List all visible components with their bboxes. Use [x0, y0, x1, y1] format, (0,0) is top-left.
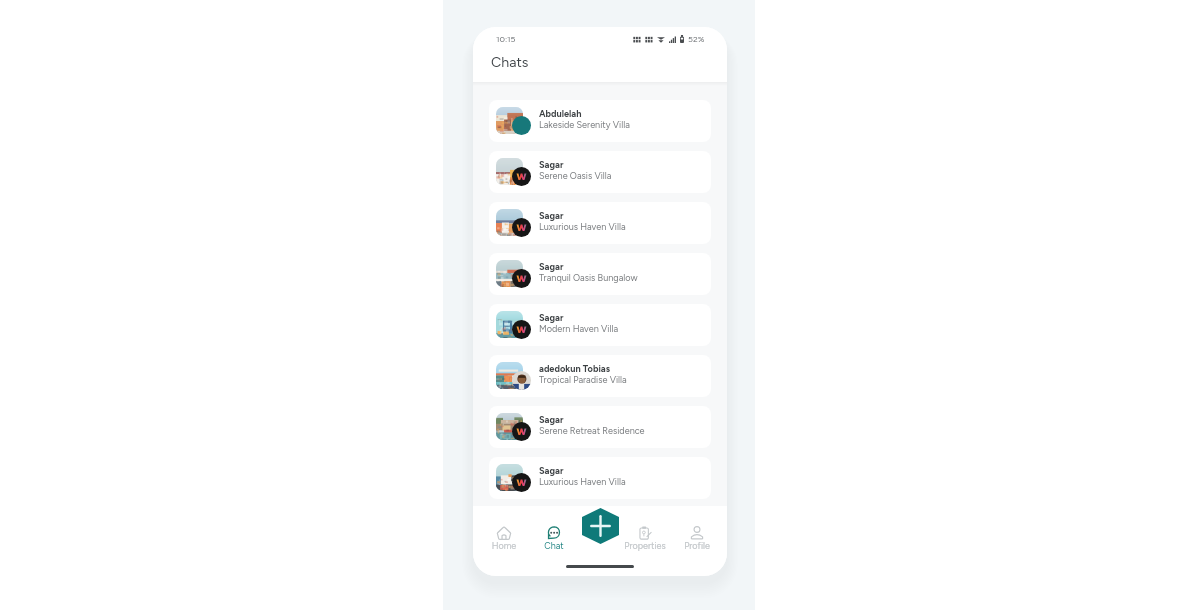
staticText: Abdulelah [539, 108, 582, 119]
staticText: Modern Haven Villa [539, 323, 619, 334]
staticText: Sagar [539, 261, 564, 272]
button[interactable]: Sagar [489, 406, 711, 448]
button[interactable]: adedokun Tobias [489, 355, 711, 397]
staticText: Profile [675, 540, 719, 551]
staticText: Tropical Paradise Villa [539, 374, 627, 385]
staticText: Serene Oasis Villa [539, 170, 612, 181]
staticText: Serene Retreat Residence [539, 425, 645, 436]
staticText: Luxurious Haven Villa [539, 221, 626, 232]
button[interactable]: Abdulelah [489, 100, 711, 142]
staticText: Tranquil Oasis Bungalow [539, 272, 638, 283]
staticText: Chats [491, 54, 529, 71]
button[interactable]: Profile [675, 526, 719, 551]
button[interactable]: Home [482, 526, 526, 551]
button[interactable]: Chat [532, 526, 576, 551]
button[interactable]: Add new [582, 508, 619, 544]
button[interactable]: Sagar [489, 202, 711, 244]
button[interactable]: Sagar [489, 253, 711, 295]
staticText: Lakeside Serenity Villa [539, 119, 630, 130]
staticText: 10:15 [496, 34, 516, 44]
staticText: Home [482, 540, 526, 551]
staticText: Sagar [539, 159, 564, 170]
staticText: Sagar [539, 465, 564, 476]
staticText: Chat [532, 540, 576, 551]
staticText: Properties [623, 540, 667, 551]
staticText: Sagar [539, 210, 564, 221]
button[interactable]: Sagar [489, 151, 711, 193]
staticText: adedokun Tobias [539, 363, 610, 374]
staticText: Sagar [539, 312, 564, 323]
staticText: Sagar [539, 414, 564, 425]
button[interactable]: Sagar [489, 457, 711, 499]
staticText: 52% [688, 34, 705, 44]
button[interactable]: Sagar [489, 304, 711, 346]
button[interactable]: Properties [623, 526, 667, 551]
staticText: Luxurious Haven Villa [539, 476, 626, 487]
